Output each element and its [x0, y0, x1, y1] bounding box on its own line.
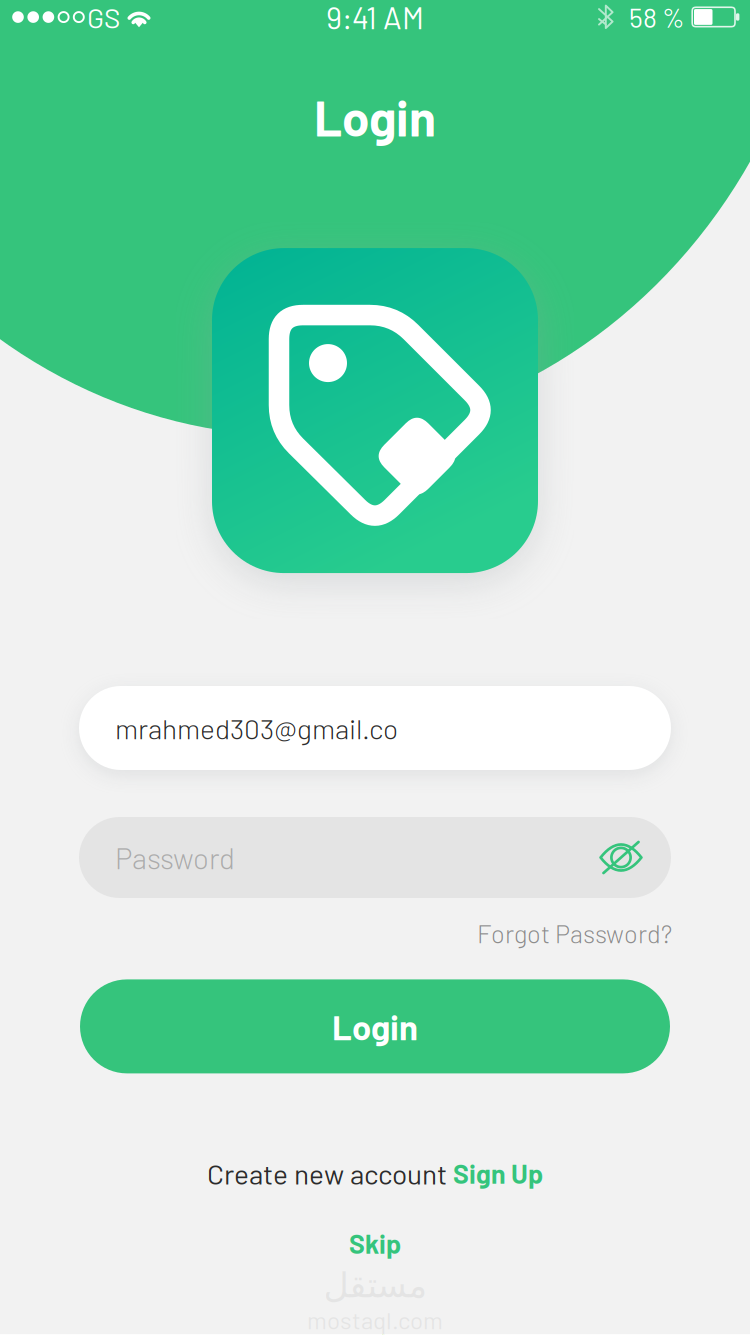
button[interactable]: Login	[80, 979, 670, 1073]
staticText: Forgot Password?	[477, 918, 672, 948]
staticText: GS	[87, 0, 120, 34]
button[interactable]: Skip	[349, 1227, 401, 1259]
button[interactable]: Sign Up	[453, 1157, 543, 1189]
staticText: Password	[115, 840, 235, 875]
staticText: 58 %	[629, 1, 685, 33]
button[interactable]: Forgot Password?	[477, 918, 672, 948]
button[interactable]: Show password	[599, 838, 671, 876]
staticText: مستقل	[323, 1265, 427, 1305]
staticText: Create new account	[207, 1156, 453, 1190]
staticText: Skip	[349, 1227, 401, 1259]
staticText: Login	[332, 1006, 418, 1047]
button[interactable]: mrahmed303@gmail.co	[79, 686, 671, 770]
staticText: mostaql.com	[307, 1305, 443, 1334]
staticText: mrahmed303@gmail.co	[115, 711, 398, 745]
staticText: Sign Up	[453, 1157, 543, 1189]
staticText: Login	[314, 87, 436, 146]
staticText: 9:41 AM	[326, 0, 424, 35]
